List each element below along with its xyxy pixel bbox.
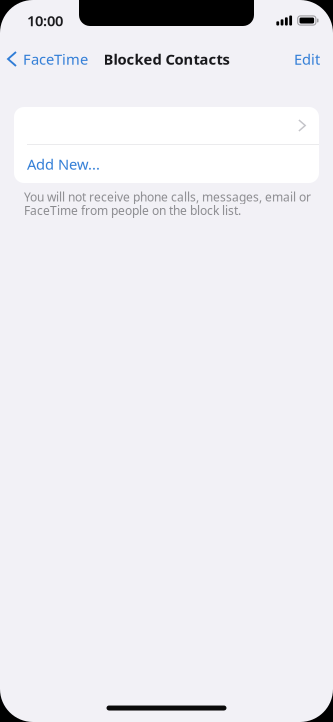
- button[interactable]: FaceTime: [4, 42, 96, 76]
- button[interactable]: Edit: [285, 42, 329, 76]
- staticText: Add New...: [27, 154, 100, 174]
- staticText: FaceTime: [23, 49, 88, 69]
- staticText: Edit: [294, 49, 320, 69]
- staticText: You will not receive phone calls, messag…: [24, 189, 311, 205]
- button[interactable]: Add New...: [14, 145, 319, 183]
- staticText: FaceTime from people on the block list.: [24, 202, 241, 218]
- staticText: Blocked Contacts: [103, 49, 229, 69]
- staticText: 10:00: [27, 11, 63, 30]
